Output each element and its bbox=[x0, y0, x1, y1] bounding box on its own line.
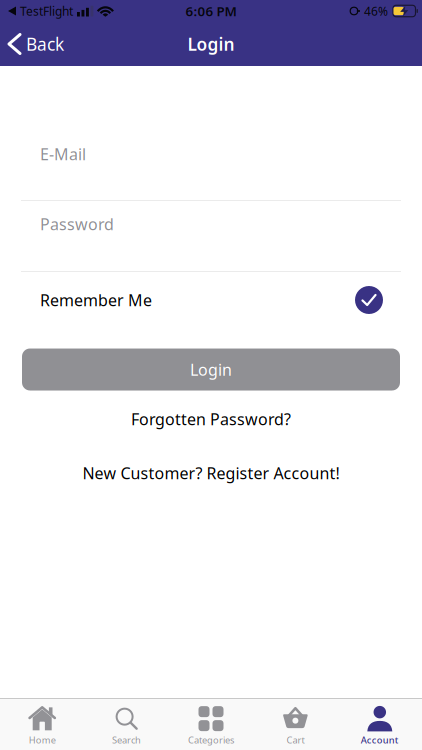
button[interactable]: Cart bbox=[253, 703, 338, 746]
staticText: Login bbox=[187, 32, 234, 55]
staticText: New Customer? Register Account! bbox=[82, 462, 339, 484]
staticText: Back bbox=[26, 32, 64, 55]
staticText: Home bbox=[29, 734, 56, 746]
button[interactable]: Login bbox=[0, 348, 422, 390]
button[interactable]: Account bbox=[338, 703, 422, 746]
button[interactable]: Back bbox=[0, 32, 64, 55]
staticText: 46% bbox=[364, 3, 388, 19]
button[interactable]: Remember Me bbox=[0, 286, 422, 314]
button[interactable]: New Customer? Register Account! bbox=[82, 462, 339, 484]
staticText: Account bbox=[361, 734, 399, 746]
staticText: Categories bbox=[188, 734, 234, 746]
staticText: E-Mail bbox=[40, 143, 86, 165]
button[interactable]: Search bbox=[84, 703, 169, 746]
staticText: 6:06 PM bbox=[185, 2, 236, 20]
button[interactable]: Forgotten Password? bbox=[131, 408, 291, 430]
staticText: Remember Me bbox=[40, 289, 152, 311]
staticText: Search bbox=[112, 734, 141, 746]
staticText: Forgotten Password? bbox=[131, 408, 291, 430]
staticText: Cart bbox=[286, 734, 304, 746]
button[interactable]: Home bbox=[0, 703, 84, 746]
staticText: Login bbox=[190, 359, 232, 380]
button[interactable]: Categories bbox=[169, 703, 253, 746]
staticText: TestFlight bbox=[20, 3, 73, 19]
staticText: Password bbox=[40, 213, 114, 235]
